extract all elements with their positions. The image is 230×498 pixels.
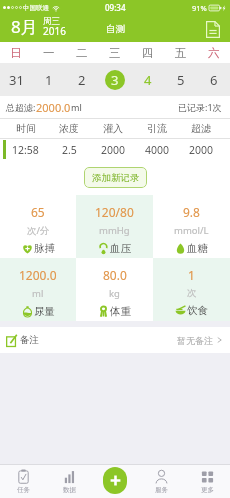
staticText: 已记录:1次 — [178, 101, 222, 113]
staticText: 9.8 — [183, 204, 200, 220]
button[interactable]: 添加新记录 — [84, 167, 147, 188]
staticText: 血糖 — [187, 242, 208, 255]
staticText: 暂无备注 — [177, 335, 213, 346]
staticText: 饮食 — [187, 304, 208, 317]
button[interactable]: 1200.0 — [0, 258, 76, 321]
staticText: 31 — [9, 71, 24, 89]
staticText: 2016 — [43, 24, 66, 38]
staticText: 四 — [142, 46, 154, 60]
staticText: 日 — [10, 46, 22, 60]
staticText: 尿量 — [34, 305, 55, 318]
staticText: 12:58 — [12, 143, 39, 157]
staticText: 1200.0 — [19, 267, 57, 283]
button[interactable]: 任务 — [0, 465, 46, 498]
staticText: 1 — [188, 267, 195, 283]
button[interactable]: 3 — [98, 63, 131, 96]
staticText: 91% — [192, 3, 207, 13]
button[interactable]: 备注 — [0, 327, 230, 353]
staticText: 服务 — [155, 486, 168, 494]
button[interactable]: 1 — [153, 258, 230, 321]
staticText: 120/80 — [95, 204, 134, 220]
staticText: 体重 — [110, 305, 131, 318]
staticText: 五 — [175, 46, 187, 60]
button[interactable]: 更多 — [184, 465, 230, 498]
staticText: 2.5 — [62, 143, 77, 157]
staticText: 时间 — [16, 122, 36, 135]
staticText: 6 — [210, 71, 218, 89]
staticText: 4 — [144, 71, 152, 89]
staticText: 09:34 — [105, 2, 126, 13]
staticText: mmol/L — [174, 224, 209, 237]
button[interactable]: 6 — [197, 63, 230, 96]
staticText: 二 — [76, 46, 88, 60]
staticText: 灌入 — [103, 122, 123, 135]
staticText: 周三 — [43, 16, 60, 27]
staticText: 1 — [45, 71, 53, 89]
staticText: 4000 — [145, 143, 170, 157]
button[interactable]: 31 — [0, 63, 32, 96]
button[interactable]: 5 — [164, 63, 197, 96]
button[interactable]: 添加记录 — [103, 467, 127, 494]
staticText: 次/分 — [27, 224, 50, 237]
staticText: 2 — [78, 71, 86, 89]
staticText: ml — [32, 287, 44, 300]
button[interactable]: 2 — [65, 63, 98, 96]
staticText: 任务 — [17, 486, 30, 494]
staticText: 2000.0 — [36, 100, 71, 115]
staticText: 更多 — [201, 486, 214, 494]
staticText: 三 — [109, 46, 121, 60]
staticText: 65 — [31, 204, 45, 220]
button[interactable]: 1 — [32, 63, 65, 96]
staticText: 总超滤: — [6, 101, 36, 113]
staticText: mmHg — [99, 224, 130, 237]
button[interactable]: 服务 — [138, 465, 184, 498]
staticText: 超滤 — [191, 122, 211, 135]
button[interactable]: 4 — [131, 63, 164, 96]
button[interactable]: 报告 — [202, 18, 224, 40]
staticText: 自测 — [106, 23, 125, 35]
button[interactable]: 80.0 — [76, 258, 153, 321]
button[interactable]: 65 — [0, 195, 76, 258]
staticText: 脉搏 — [34, 242, 55, 255]
staticText: kg — [109, 287, 120, 300]
staticText: 添加新记录 — [92, 172, 140, 184]
staticText: 2000 — [101, 143, 126, 157]
staticText: 六 — [208, 46, 220, 60]
staticText: 中国联通 — [23, 4, 49, 12]
button[interactable]: 数据 — [46, 465, 92, 498]
staticText: ml — [71, 101, 82, 113]
staticText: 数据 — [63, 486, 76, 494]
staticText: 2000 — [189, 143, 214, 157]
staticText: 3 — [111, 71, 119, 89]
staticText: 一 — [43, 46, 55, 60]
button[interactable]: 12:58 — [0, 139, 230, 160]
staticText: 8月 — [11, 15, 38, 38]
staticText: 次 — [187, 287, 197, 299]
staticText: 浓度 — [59, 122, 79, 135]
staticText: 5 — [177, 71, 185, 89]
staticText: 80.0 — [103, 267, 127, 283]
staticText: 引流 — [147, 122, 167, 135]
staticText: 备注 — [20, 334, 39, 346]
button[interactable]: 120/80 — [76, 195, 153, 258]
button[interactable]: 9.8 — [153, 195, 230, 258]
staticText: 血压 — [110, 242, 131, 255]
